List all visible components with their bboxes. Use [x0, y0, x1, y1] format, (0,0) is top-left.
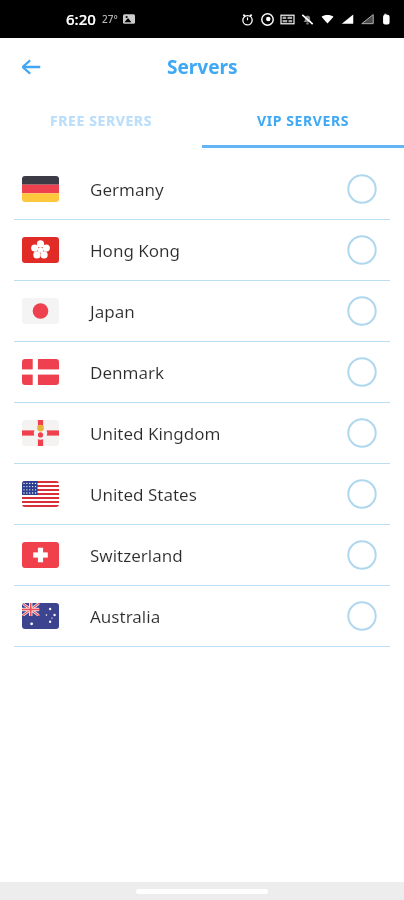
staticText: Australia [90, 605, 161, 628]
staticText: 27° [102, 12, 118, 26]
button[interactable]: Denmark [0, 342, 404, 402]
button[interactable]: Hong Kong [0, 220, 404, 280]
staticText: United Kingdom [90, 422, 221, 445]
button[interactable]: Japan [0, 281, 404, 341]
button[interactable]: United States [0, 464, 404, 524]
button[interactable]: Back [10, 46, 52, 88]
button[interactable]: United Kingdom [0, 403, 404, 463]
staticText: Servers [167, 54, 238, 80]
staticText: Hong Kong [90, 239, 181, 262]
button[interactable]: FREE SERVERS [0, 96, 202, 145]
button[interactable]: Switzerland [0, 525, 404, 585]
button[interactable]: Australia [0, 586, 404, 646]
button[interactable]: Germany [0, 159, 404, 219]
staticText: FREE SERVERS [50, 111, 152, 130]
staticText: United States [90, 483, 197, 506]
staticText: VIP SERVERS [257, 111, 350, 130]
staticText: Japan [90, 300, 135, 323]
staticText: Germany [90, 178, 164, 201]
staticText: Denmark [90, 361, 165, 384]
staticText: 6:20 [66, 9, 96, 29]
staticText: Switzerland [90, 544, 183, 567]
button[interactable]: VIP SERVERS [202, 96, 404, 145]
